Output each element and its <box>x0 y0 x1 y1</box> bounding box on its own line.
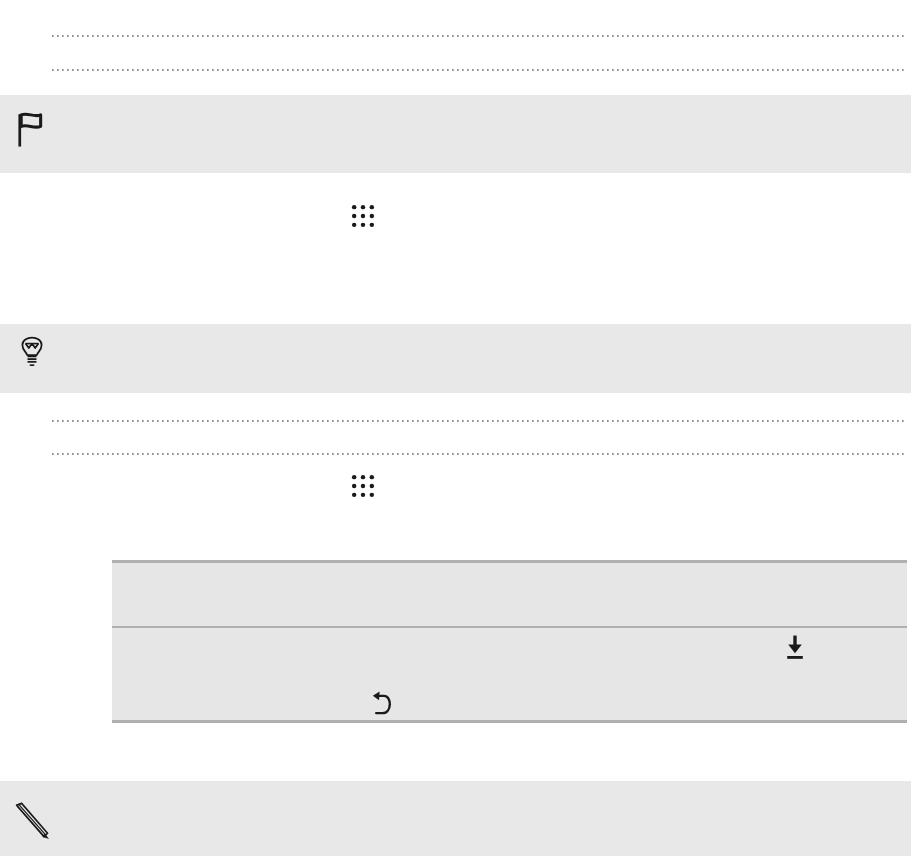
button[interactable]: Tip <box>12 330 52 370</box>
button[interactable]: All apps <box>346 199 380 233</box>
button[interactable]: Flag <box>10 108 54 152</box>
button[interactable] <box>0 95 911 173</box>
button[interactable]: All apps <box>346 469 380 503</box>
button[interactable]: Download <box>778 630 812 664</box>
button[interactable] <box>0 781 911 856</box>
button[interactable]: Back <box>365 688 397 720</box>
button[interactable] <box>0 324 911 393</box>
button[interactable]: Edit <box>9 799 53 843</box>
